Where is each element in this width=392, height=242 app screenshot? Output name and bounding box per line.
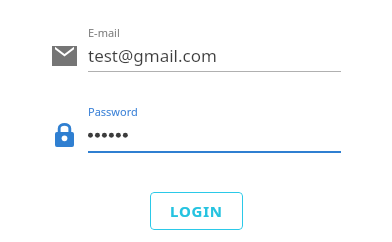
staticText: Password	[88, 104, 138, 119]
button[interactable]	[88, 22, 341, 74]
staticText: LOGIN	[170, 201, 223, 221]
button[interactable]: Password	[50, 120, 78, 148]
staticText: test@gmail.com	[88, 44, 217, 67]
button[interactable]	[88, 100, 341, 153]
button[interactable]: E-mail	[50, 44, 78, 68]
staticText: E-mail	[88, 25, 120, 40]
button[interactable]: LOGIN	[150, 192, 243, 230]
